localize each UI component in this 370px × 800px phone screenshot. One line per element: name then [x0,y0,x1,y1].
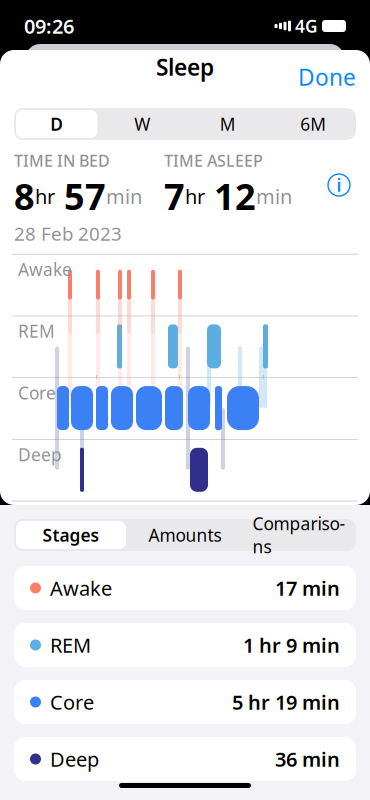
button[interactable]: W [99,108,185,140]
staticText: 5 hr 19 min [232,689,340,715]
button[interactable]: Amounts [128,519,242,551]
staticText: Deep [50,746,99,772]
button[interactable]: M [185,108,270,140]
button[interactable]: 6M [270,108,356,140]
staticText: Deep [18,443,62,466]
button[interactable]: Stages [14,519,128,551]
staticText: min [106,183,142,209]
staticText: 17 min [275,575,340,601]
button[interactable]: Comparisons [242,519,356,551]
staticText: 09:26 [24,13,74,39]
button[interactable]: Done [284,52,370,102]
staticText: Core [50,689,94,715]
button[interactable]: Awake [14,566,356,610]
staticText: Stages [42,523,99,546]
staticText: Core [18,381,56,404]
staticText: hr [185,183,205,209]
staticText: REM [50,632,91,658]
staticText: 6M [300,112,326,135]
staticText: 8 [14,172,35,220]
staticText: Comparisons [252,512,345,558]
staticText: hr [35,183,55,209]
button[interactable]: About sleep data [322,168,356,202]
staticText: 28 Feb 2023 [14,221,122,246]
staticText: D [50,112,63,135]
staticText: Awake [18,258,72,281]
staticText: 36 min [275,746,340,772]
staticText: 12 [205,172,256,220]
staticText: min [256,183,292,209]
staticText: 23:00 [171,501,211,522]
button[interactable]: D [14,108,99,140]
button[interactable]: Core [14,680,356,724]
staticText: Amounts [148,523,221,546]
staticText: Done [298,62,356,92]
staticText: W [134,112,150,135]
staticText: 1 hr 9 min [243,632,340,658]
button[interactable]: Deep [14,737,356,781]
staticText: 7 [164,172,185,220]
staticText: 05:00 [338,501,370,522]
staticText: TIME ASLEEP [164,150,263,171]
staticText: 57 [55,172,106,220]
staticText: Awake [50,575,112,601]
staticText: M [220,112,236,135]
staticText: REM [18,319,55,342]
staticText: 4G [295,14,318,37]
staticText: TIME IN BED [14,150,110,171]
staticText: 02:00 [255,501,295,522]
staticText: i [336,173,341,196]
staticText: Sleep [156,52,214,82]
button[interactable]: REM [14,623,356,667]
